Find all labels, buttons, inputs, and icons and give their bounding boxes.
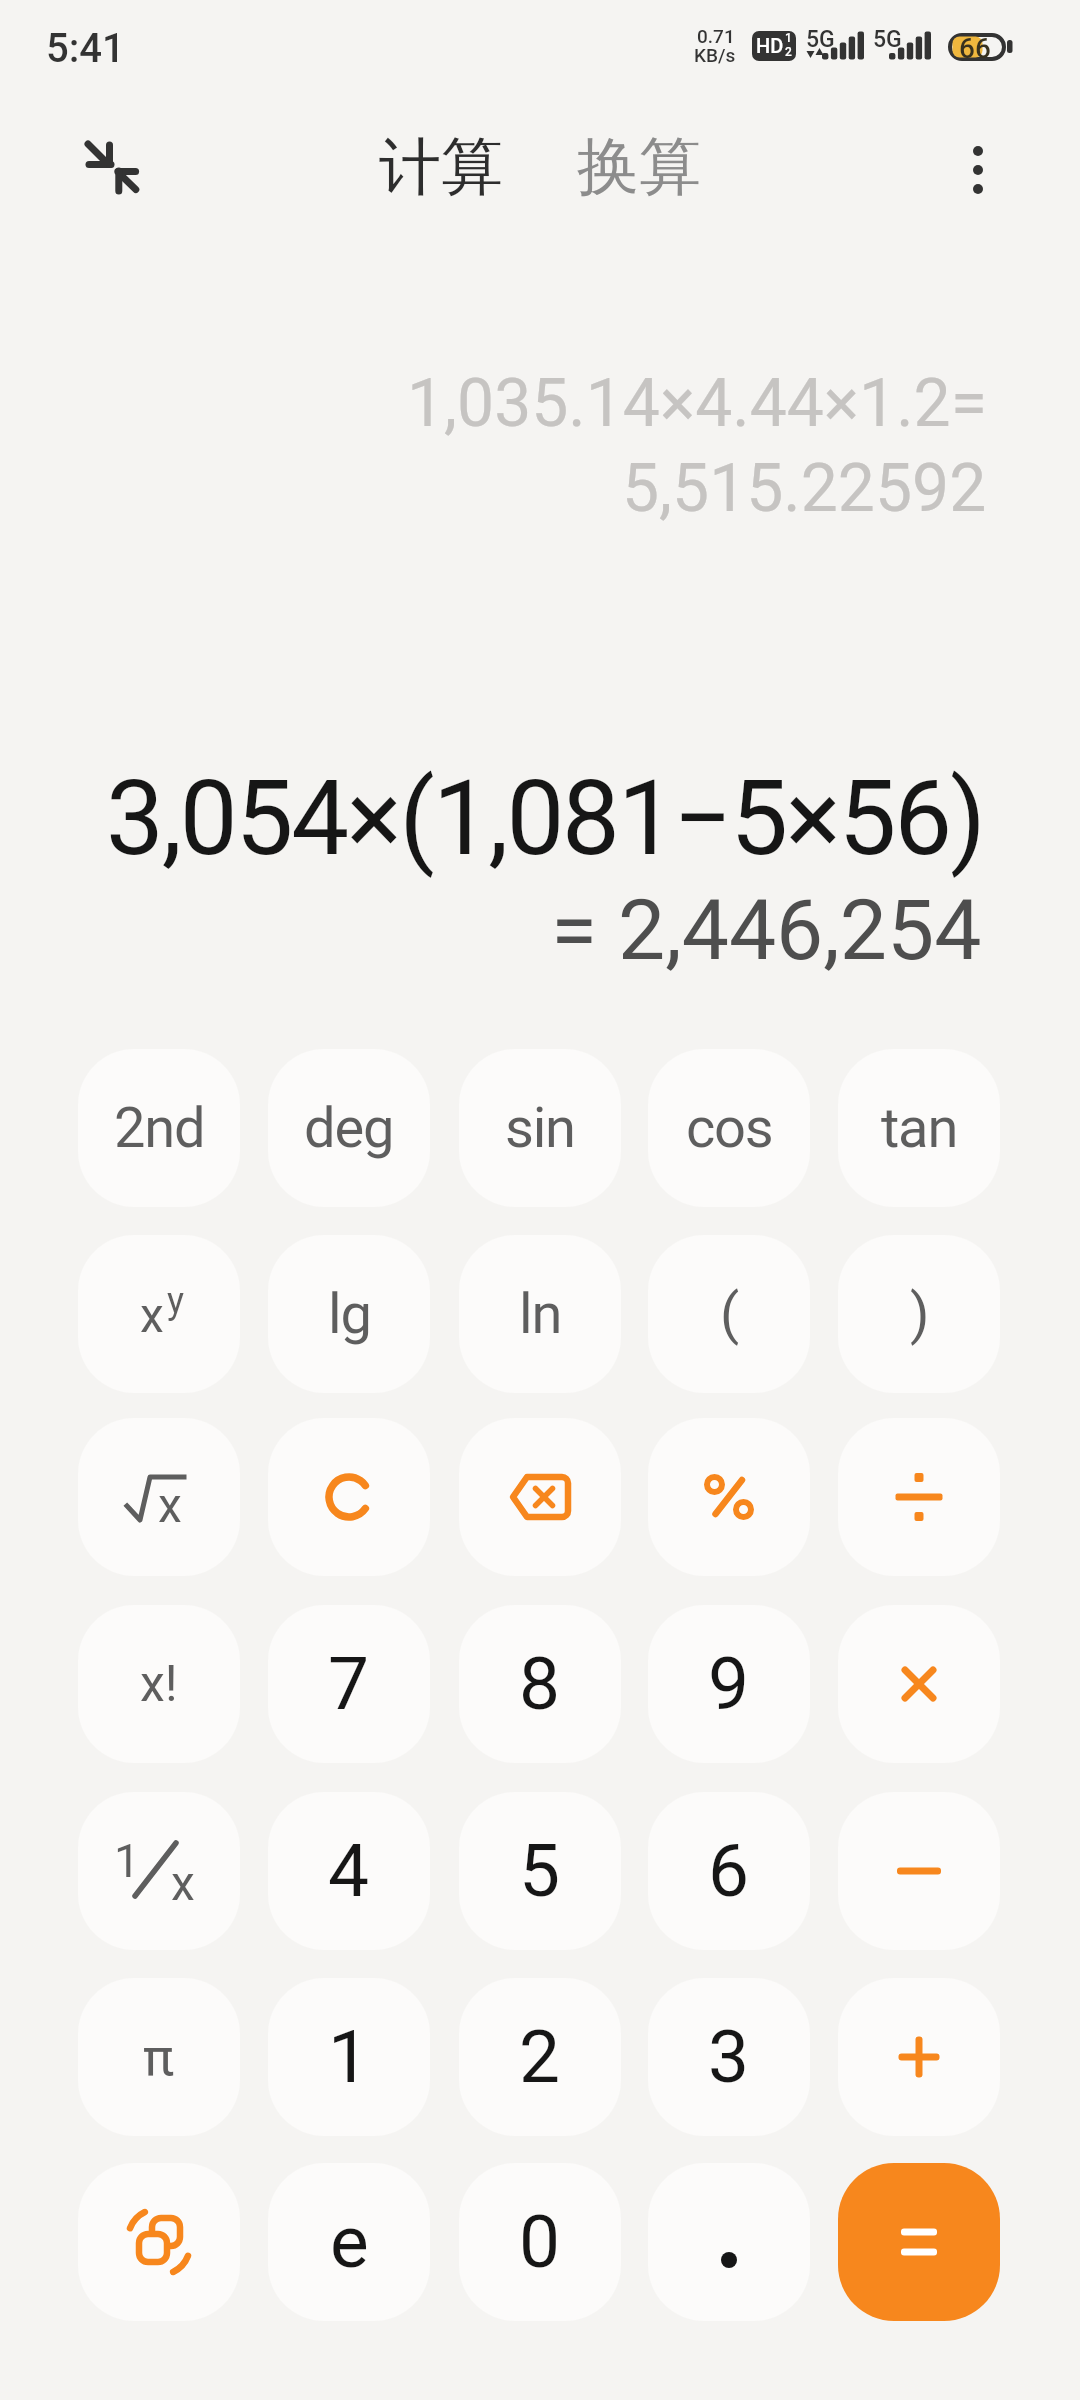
button[interactable] xyxy=(838,2163,1000,2321)
button[interactable]: lg xyxy=(268,1235,430,1393)
staticText: = 2,446,254 xyxy=(551,881,982,979)
button[interactable] xyxy=(78,2163,240,2321)
staticText: 7 xyxy=(328,1641,370,1727)
staticText: x! xyxy=(140,1655,178,1714)
button[interactable]: ) xyxy=(838,1235,1000,1393)
button[interactable]: 2nd xyxy=(78,1049,240,1207)
button[interactable] xyxy=(459,1418,621,1576)
button[interactable]: e xyxy=(268,2163,430,2321)
button[interactable] xyxy=(838,1418,1000,1576)
staticText: x xyxy=(171,1855,195,1911)
staticText: 1 xyxy=(114,1834,140,1888)
button[interactable]: 8 xyxy=(459,1605,621,1763)
staticText: cos xyxy=(686,1095,773,1161)
button[interactable]: 4 xyxy=(268,1792,430,1950)
button[interactable] xyxy=(70,128,150,204)
staticText: 3,054×(1,081−5×56) xyxy=(106,758,984,879)
staticText: 66 xyxy=(959,32,991,65)
staticText: ( xyxy=(720,1281,738,1347)
staticText: 4 xyxy=(328,1828,370,1914)
button[interactable]: 0 xyxy=(459,2163,621,2321)
staticText: x xyxy=(140,1287,164,1343)
staticText: y xyxy=(167,1280,185,1322)
staticText: ) xyxy=(910,1281,929,1347)
staticText: tan xyxy=(881,1095,958,1161)
button[interactable]: deg xyxy=(268,1049,430,1207)
staticText: ln xyxy=(519,1281,562,1347)
staticText: 5G xyxy=(806,26,835,53)
button[interactable] xyxy=(838,1978,1000,2136)
staticText: 1 xyxy=(328,2014,370,2100)
staticText: 2nd xyxy=(114,1095,205,1161)
staticText: 0.71 xyxy=(697,25,735,47)
staticText: 3 xyxy=(708,2014,750,2100)
staticText: e xyxy=(330,2199,369,2285)
button[interactable]: sin xyxy=(459,1049,621,1207)
staticText: 2 xyxy=(519,2014,561,2100)
button[interactable]: x! xyxy=(78,1605,240,1763)
button[interactable]: cos xyxy=(648,1049,810,1207)
staticText: lg xyxy=(328,1281,371,1347)
button[interactable]: x xyxy=(78,1235,240,1393)
button[interactable] xyxy=(838,1605,1000,1763)
staticText: deg xyxy=(304,1095,394,1161)
staticText: 5:41 xyxy=(46,25,125,72)
staticText: KB/s xyxy=(694,44,736,66)
button[interactable] xyxy=(648,2163,810,2321)
staticText: 5G xyxy=(873,26,902,53)
button[interactable]: 3 xyxy=(648,1978,810,2136)
button[interactable]: ( xyxy=(648,1235,810,1393)
staticText: 5 xyxy=(519,1828,561,1914)
staticText: 9 xyxy=(708,1641,750,1727)
button[interactable]: x xyxy=(78,1418,240,1576)
button[interactable] xyxy=(950,130,1010,206)
button[interactable] xyxy=(648,1418,810,1576)
staticText: 2 xyxy=(785,45,792,59)
staticText: sin xyxy=(505,1095,575,1161)
button[interactable]: π xyxy=(78,1978,240,2136)
staticText: 0 xyxy=(519,2199,561,2285)
button[interactable]: 6 xyxy=(648,1792,810,1950)
button[interactable]: 1 xyxy=(268,1978,430,2136)
button[interactable]: 1 xyxy=(78,1792,240,1950)
staticText: 1,035.14×4.44×1.2= xyxy=(407,365,987,442)
staticText: 1 xyxy=(785,31,792,45)
button[interactable]: tan xyxy=(838,1049,1000,1207)
staticText: x xyxy=(158,1477,182,1533)
button[interactable]: 7 xyxy=(268,1605,430,1763)
staticText: 8 xyxy=(519,1641,561,1727)
staticText: 5,515.22592 xyxy=(622,450,987,527)
button[interactable]: 2 xyxy=(459,1978,621,2136)
button[interactable] xyxy=(268,1418,430,1576)
button[interactable] xyxy=(838,1792,1000,1950)
button[interactable]: 换算 xyxy=(577,128,701,206)
staticText: HD xyxy=(756,34,784,57)
button[interactable]: ln xyxy=(459,1235,621,1393)
button[interactable]: 计算 xyxy=(379,128,503,206)
button[interactable]: 9 xyxy=(648,1605,810,1763)
staticText: π xyxy=(143,2027,175,2088)
button[interactable]: 5 xyxy=(459,1792,621,1950)
staticText: 6 xyxy=(708,1828,750,1914)
